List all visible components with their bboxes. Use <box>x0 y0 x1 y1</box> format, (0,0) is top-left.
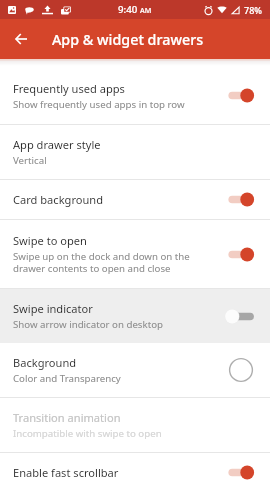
button[interactable]: Background <box>0 343 270 397</box>
staticText: 78% <box>244 4 262 16</box>
staticText: Show arrow indicator on desktop <box>13 318 163 331</box>
staticText: App drawer style <box>13 137 101 152</box>
staticText: Incompatible with swipe to open <box>13 427 162 440</box>
button[interactable]: App drawer style <box>0 125 270 179</box>
staticText: Color and Transparency <box>13 372 121 385</box>
button[interactable]: Frequently used apps <box>0 59 270 124</box>
button[interactable]: Transition animation <box>0 398 270 452</box>
staticText: Card background <box>13 192 104 207</box>
staticText: Show frequently used apps in top row <box>13 98 185 111</box>
staticText: Swipe up on the dock and down on the dra… <box>13 250 190 275</box>
staticText: AM <box>140 5 152 15</box>
staticText: Frequently used apps <box>13 81 125 96</box>
staticText: Swipe to open <box>13 233 87 248</box>
button[interactable]: Swipe indicator <box>0 289 270 343</box>
staticText: Enable fast scrollbar <box>13 465 119 480</box>
button[interactable]: Card background <box>0 180 270 219</box>
staticText: Transition animation <box>13 410 121 425</box>
button[interactable]: Enable fast scrollbar <box>0 453 270 480</box>
staticText: Vertical <box>13 154 47 167</box>
staticText: Background <box>13 355 77 370</box>
button[interactable]: Back <box>0 19 42 59</box>
button[interactable]: Swipe to open <box>0 220 270 288</box>
staticText: App & widget drawers <box>52 30 204 49</box>
staticText: Swipe indicator <box>13 301 93 316</box>
staticText: 9:40 <box>118 3 138 16</box>
